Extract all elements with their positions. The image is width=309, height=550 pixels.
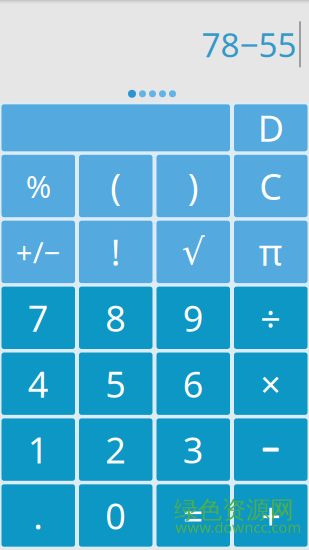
staticText: 绿色资源网 bbox=[174, 495, 294, 525]
button[interactable]: 0 bbox=[79, 484, 152, 547]
button[interactable]: Divide bbox=[234, 287, 307, 349]
button[interactable]: Factorial bbox=[79, 221, 152, 283]
staticText: . bbox=[33, 492, 43, 539]
staticText: % bbox=[26, 166, 51, 206]
staticText: 4 bbox=[28, 360, 49, 408]
staticText: www.downcc.com bbox=[175, 517, 301, 537]
staticText: ÷ bbox=[260, 294, 281, 342]
button[interactable]: Equals bbox=[156, 484, 230, 547]
staticText: ! bbox=[111, 228, 121, 276]
staticText: D bbox=[258, 104, 284, 152]
staticText: 78−55 bbox=[201, 22, 296, 66]
staticText: +/− bbox=[16, 232, 61, 271]
button[interactable]: Delete bbox=[234, 104, 307, 151]
staticText: ( bbox=[110, 162, 121, 210]
staticText: 5 bbox=[105, 360, 126, 408]
button[interactable]: Minus bbox=[234, 418, 307, 481]
button[interactable]: Pi bbox=[234, 221, 307, 283]
staticText: 9 bbox=[183, 294, 204, 342]
button[interactable]: 7 bbox=[1, 287, 75, 349]
button[interactable]: Multiply bbox=[234, 352, 307, 415]
staticText: √ bbox=[182, 231, 205, 272]
button[interactable]: Plus or minus bbox=[1, 221, 75, 283]
button[interactable]: Decimal point bbox=[1, 484, 75, 547]
staticText: π bbox=[259, 228, 283, 276]
button[interactable]: 5 bbox=[79, 352, 152, 415]
staticText: = bbox=[183, 492, 204, 539]
staticText: 0 bbox=[105, 492, 126, 539]
staticText: ) bbox=[188, 162, 199, 210]
button[interactable]: 1 bbox=[1, 418, 75, 481]
staticText: 1 bbox=[28, 426, 49, 473]
staticText: + bbox=[260, 492, 281, 539]
staticText: 8 bbox=[105, 294, 126, 342]
button[interactable]: 2 bbox=[79, 418, 152, 481]
button[interactable]: 3 bbox=[156, 418, 230, 481]
staticText: 6 bbox=[183, 360, 204, 408]
button[interactable]: 4 bbox=[1, 352, 75, 415]
button[interactable]: Percent bbox=[1, 155, 75, 217]
button[interactable]: Expression field bbox=[1, 104, 230, 151]
button[interactable]: Clear bbox=[234, 155, 307, 217]
staticText: × bbox=[260, 360, 281, 408]
button[interactable]: Close parenthesis bbox=[156, 155, 230, 217]
button[interactable]: Square root bbox=[156, 221, 230, 283]
staticText: C bbox=[259, 162, 282, 210]
button[interactable]: 6 bbox=[156, 352, 230, 415]
staticText: 3 bbox=[183, 426, 204, 473]
button[interactable]: 9 bbox=[156, 287, 230, 349]
staticText: 7 bbox=[28, 294, 49, 342]
staticText: 2 bbox=[105, 426, 126, 473]
button[interactable]: 8 bbox=[79, 287, 152, 349]
button[interactable]: Open parenthesis bbox=[79, 155, 152, 217]
button[interactable]: Plus bbox=[234, 484, 307, 547]
